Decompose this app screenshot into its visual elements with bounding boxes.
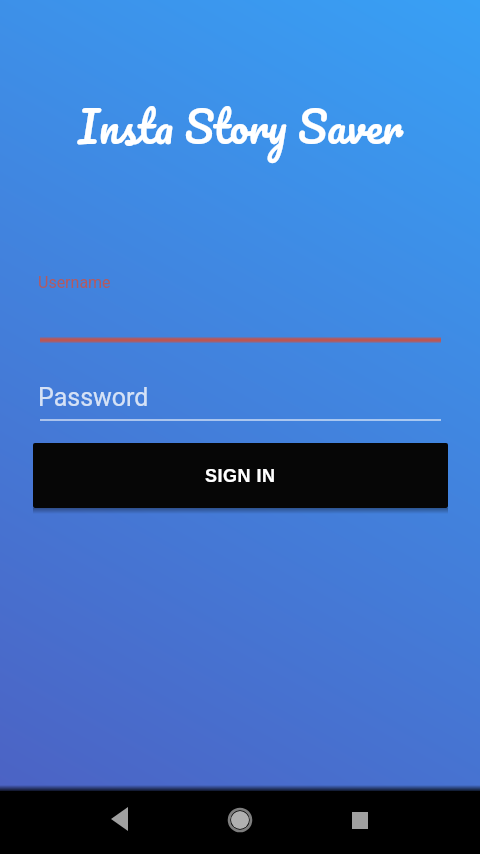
staticText: Password [38, 383, 149, 412]
staticText: Username [38, 273, 111, 292]
button[interactable] [336, 797, 384, 845]
button[interactable]: Password [33, 380, 448, 425]
button[interactable] [216, 797, 264, 845]
staticText: SIGN IN [205, 466, 276, 486]
staticText: Insta Story Saver [78, 89, 404, 163]
button[interactable]: Username [33, 270, 448, 350]
button[interactable]: SIGN IN [33, 443, 448, 508]
button[interactable] [96, 797, 144, 845]
